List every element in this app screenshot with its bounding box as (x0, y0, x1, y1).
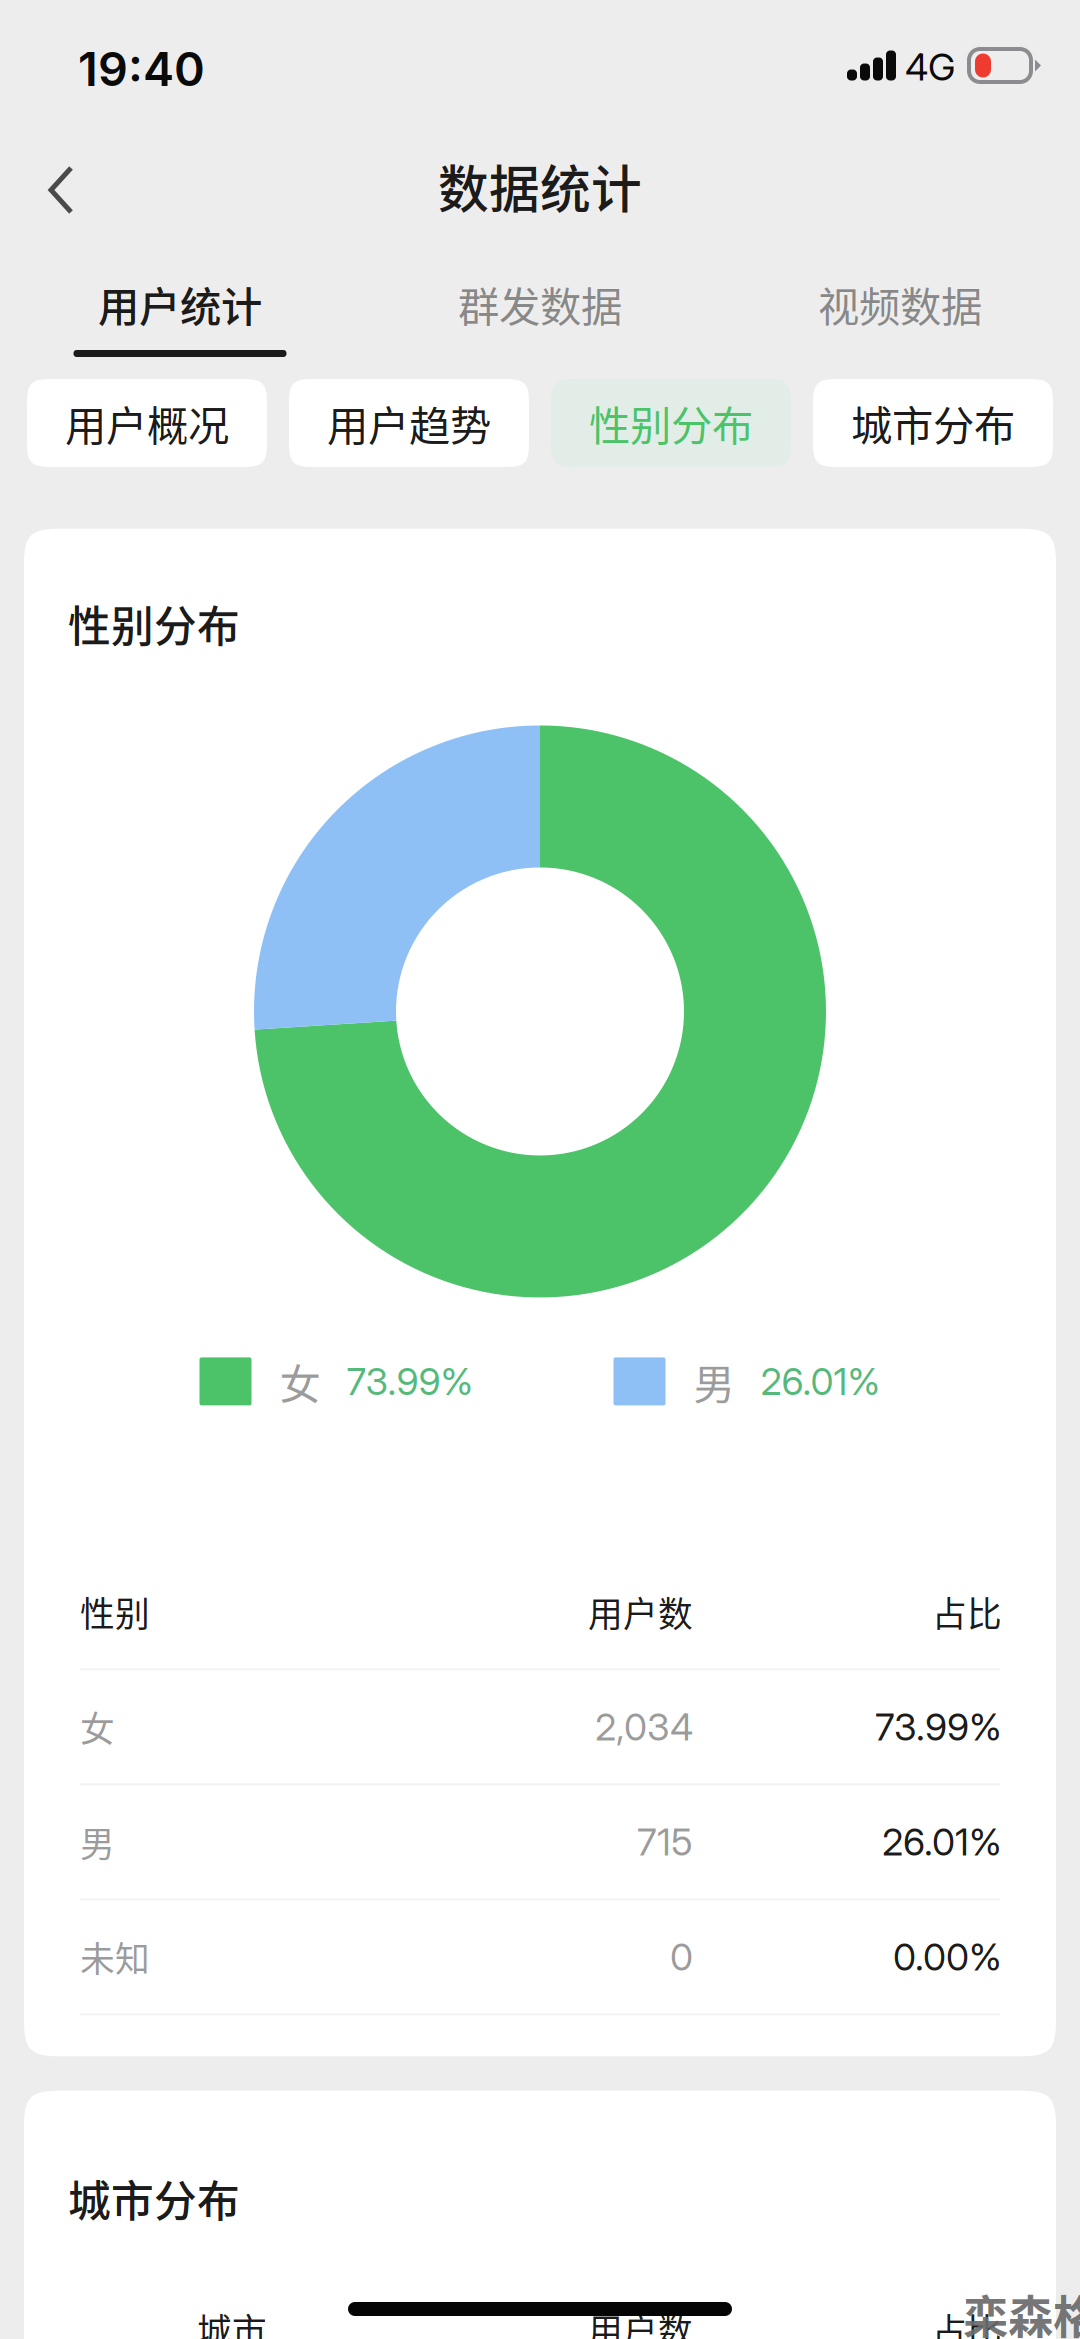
staticText: 用户统计 (98, 274, 262, 334)
button[interactable]: Back (0, 128, 110, 244)
button[interactable]: 视频数据 (720, 279, 1080, 365)
button[interactable]: 用户概况 (27, 379, 267, 467)
staticText: 女 (80, 1702, 115, 1752)
staticText: 未知 (80, 1932, 150, 1982)
staticText: 26.01% (760, 1359, 880, 1404)
button[interactable]: 用户趋势 (289, 379, 529, 467)
staticText: 用户数 (588, 1587, 693, 1637)
button[interactable]: 性别分布 (551, 379, 791, 467)
staticText: 女 (279, 1351, 320, 1411)
button[interactable]: 群发数据 (360, 279, 720, 365)
staticText: 占比 (932, 2304, 1002, 2339)
staticText: 城市分布 (68, 2168, 240, 2229)
staticText: 用户趋势 (327, 393, 491, 453)
button[interactable]: 城市分布 (813, 379, 1053, 467)
staticText: 男 (693, 1351, 734, 1411)
staticText: 性别分布 (589, 393, 753, 453)
staticText: 19:40 (78, 41, 205, 97)
staticText: 男 (80, 1817, 115, 1867)
staticText: 用户概况 (65, 393, 229, 453)
staticText: 栾森格 (963, 2281, 1080, 2339)
staticText: 26.01% (882, 1819, 1002, 1864)
staticText: 0.00% (893, 1934, 1002, 1979)
staticText: 群发数据 (458, 274, 622, 334)
staticText: 性别 (80, 1587, 150, 1637)
staticText: 73.99% (875, 1704, 1002, 1749)
staticText: 73.99% (346, 1359, 473, 1404)
staticText: 2,034 (595, 1704, 693, 1749)
staticText: 715 (637, 1819, 693, 1864)
staticText: 数据统计 (438, 149, 642, 223)
staticText: 0 (670, 1934, 693, 1979)
button[interactable]: 用户统计 (0, 279, 360, 365)
staticText: 性别分布 (68, 593, 240, 654)
staticText: 占比 (932, 1587, 1002, 1637)
staticText: 城市分布 (851, 393, 1015, 453)
staticText: 用户数 (588, 2304, 693, 2339)
staticText: 4G (905, 44, 955, 90)
staticText: 视频数据 (818, 274, 982, 334)
staticText: 城市 (197, 2304, 267, 2339)
